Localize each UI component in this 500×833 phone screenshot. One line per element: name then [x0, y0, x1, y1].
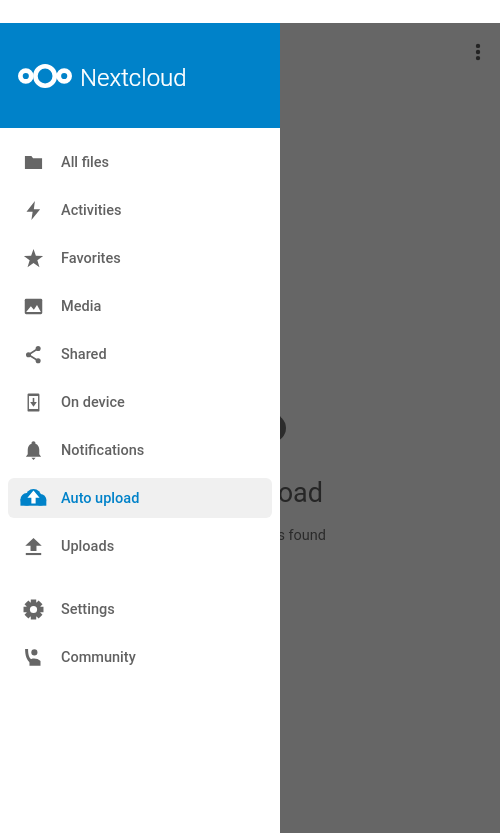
- button[interactable]: Community: [8, 637, 272, 677]
- staticText: Auto upload: [61, 490, 140, 507]
- button[interactable]: On device: [8, 382, 272, 422]
- button[interactable]: Activities: [8, 190, 272, 230]
- button[interactable]: Favorites: [8, 238, 272, 278]
- staticText: Activities: [61, 202, 122, 219]
- staticText: Auto upload: [178, 477, 323, 509]
- button[interactable]: Notifications: [8, 430, 272, 470]
- button[interactable]: All files: [8, 142, 272, 182]
- staticText: Notifications: [61, 442, 145, 459]
- button[interactable]: Uploads: [8, 526, 272, 566]
- button[interactable]: Auto upload: [8, 478, 272, 518]
- staticText: Settings: [61, 601, 115, 618]
- button[interactable]: Media: [8, 286, 272, 326]
- staticText: Community: [61, 649, 136, 666]
- button[interactable]: Shared: [8, 334, 272, 374]
- staticText: Favorites: [61, 250, 121, 267]
- staticText: Uploads: [61, 538, 115, 555]
- staticText: Shared: [61, 346, 107, 363]
- staticText: Media: [61, 298, 102, 315]
- button[interactable]: Nextcloud: [0, 23, 280, 128]
- staticText: On device: [61, 394, 125, 411]
- staticText: No media folders found: [174, 527, 326, 544]
- button[interactable]: Settings: [8, 589, 272, 629]
- staticText: All files: [61, 154, 110, 171]
- staticText: Nextcloud: [80, 64, 187, 92]
- button[interactable]: More options: [458, 32, 498, 72]
